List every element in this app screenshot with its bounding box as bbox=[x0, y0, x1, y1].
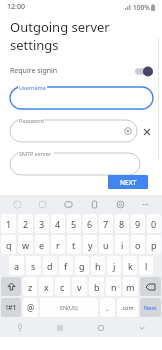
button[interactable]: 3 bbox=[35, 214, 49, 233]
button[interactable]: k bbox=[123, 256, 137, 275]
button[interactable]: 1 bbox=[1, 214, 16, 233]
staticText: z bbox=[28, 281, 33, 293]
button[interactable]: i bbox=[115, 235, 129, 254]
button[interactable]: 8 bbox=[115, 214, 129, 233]
button[interactable]: Hide keyboard bbox=[134, 320, 150, 336]
staticText: b bbox=[94, 281, 100, 293]
button[interactable]: More options bbox=[136, 195, 154, 213]
button[interactable]: Home bbox=[93, 320, 109, 336]
staticText: t bbox=[72, 239, 76, 251]
button[interactable]: . bbox=[100, 298, 115, 317]
button[interactable]: o bbox=[131, 235, 145, 254]
staticText: . bbox=[106, 302, 109, 313]
staticText: 3 bbox=[39, 218, 45, 230]
button[interactable]: Backspace bbox=[140, 277, 161, 296]
button[interactable]: GIF bbox=[59, 195, 77, 213]
staticText: j bbox=[113, 260, 116, 272]
button[interactable]: n bbox=[106, 277, 121, 296]
staticText: e bbox=[39, 239, 45, 251]
staticText: 0 bbox=[151, 218, 157, 230]
button[interactable]: a bbox=[9, 256, 24, 275]
button[interactable]: 4 bbox=[51, 214, 65, 233]
button[interactable]: Clear bbox=[140, 125, 153, 138]
button[interactable]: j bbox=[107, 256, 121, 275]
button[interactable]: r bbox=[51, 235, 65, 254]
button[interactable]: 9 bbox=[131, 214, 145, 233]
button[interactable]: h bbox=[91, 256, 105, 275]
staticText: .com bbox=[121, 304, 134, 311]
button[interactable]: Shift bbox=[1, 277, 21, 296]
button[interactable]: t bbox=[67, 235, 81, 254]
staticText: v bbox=[77, 281, 82, 293]
staticText: 9 bbox=[135, 218, 141, 230]
staticText: 100% bbox=[133, 3, 150, 12]
button[interactable]: g bbox=[75, 256, 89, 275]
button[interactable]: y bbox=[83, 235, 97, 254]
button[interactable]: Next bbox=[140, 298, 161, 317]
button[interactable]: s bbox=[26, 256, 41, 275]
button[interactable]: 2 bbox=[18, 214, 33, 233]
button[interactable]: b bbox=[89, 277, 104, 296]
staticText: Outgoing server settings bbox=[10, 18, 153, 54]
button[interactable]: .com bbox=[117, 298, 138, 317]
staticText: u bbox=[103, 239, 109, 251]
button[interactable]: v bbox=[72, 277, 87, 296]
button[interactable]: z bbox=[23, 277, 37, 296]
button[interactable]: SMTP server bbox=[10, 153, 140, 175]
button[interactable]: l bbox=[139, 256, 153, 275]
staticText: q bbox=[6, 239, 12, 251]
button[interactable]: 0 bbox=[147, 214, 161, 233]
button[interactable]: p bbox=[147, 235, 161, 254]
staticText: Username bbox=[19, 84, 46, 91]
staticText: 8 bbox=[119, 218, 125, 230]
button[interactable]: Recent apps bbox=[52, 320, 68, 336]
staticText: NEXT bbox=[120, 178, 137, 187]
button[interactable]: Password bbox=[10, 120, 137, 142]
staticText: x bbox=[44, 281, 49, 293]
staticText: c bbox=[60, 281, 65, 293]
button[interactable]: EN(US) bbox=[40, 298, 98, 317]
staticText: 2 bbox=[23, 218, 29, 230]
staticText: r bbox=[56, 239, 60, 251]
staticText: f bbox=[64, 260, 68, 272]
button[interactable]: q bbox=[1, 235, 16, 254]
button[interactable]: 7 bbox=[99, 214, 113, 233]
button[interactable]: Stickers bbox=[33, 195, 51, 213]
button[interactable]: 6 bbox=[83, 214, 97, 233]
staticText: a bbox=[14, 260, 20, 272]
staticText: Require signin bbox=[10, 66, 58, 76]
button[interactable]: Voice input bbox=[12, 320, 28, 336]
button[interactable]: Settings bbox=[111, 195, 129, 213]
button[interactable]: c bbox=[55, 277, 70, 296]
button[interactable]: w bbox=[18, 235, 33, 254]
button[interactable]: Emoji bbox=[8, 195, 26, 213]
staticText: h bbox=[95, 260, 101, 272]
staticText: n bbox=[111, 281, 117, 293]
staticText: l bbox=[145, 260, 148, 272]
staticText: 12:00 bbox=[7, 2, 25, 12]
staticText: 6 bbox=[87, 218, 93, 230]
button[interactable]: @ bbox=[23, 298, 38, 317]
button[interactable]: NEXT bbox=[108, 175, 148, 189]
button[interactable]: Show password bbox=[123, 126, 133, 136]
staticText: d bbox=[47, 260, 53, 272]
button[interactable]: 5 bbox=[67, 214, 81, 233]
staticText: o bbox=[135, 239, 141, 251]
button[interactable]: e bbox=[35, 235, 49, 254]
button[interactable]: !#1 bbox=[1, 298, 21, 317]
button[interactable]: u bbox=[99, 235, 113, 254]
staticText: !#1 bbox=[6, 303, 17, 313]
staticText: y bbox=[88, 239, 93, 251]
button[interactable]: Require signin bbox=[10, 64, 153, 78]
staticText: 5 bbox=[71, 218, 77, 230]
staticText: m bbox=[126, 281, 135, 293]
button[interactable]: f bbox=[59, 256, 73, 275]
button[interactable]: m bbox=[123, 277, 138, 296]
button[interactable]: x bbox=[39, 277, 53, 296]
button[interactable]: d bbox=[43, 256, 57, 275]
button[interactable]: Require signin bbox=[135, 66, 153, 77]
button[interactable]: Username bbox=[10, 87, 153, 109]
staticText: Password bbox=[19, 117, 44, 124]
staticText: Next bbox=[144, 304, 157, 311]
button[interactable]: Clipboard bbox=[85, 195, 103, 213]
